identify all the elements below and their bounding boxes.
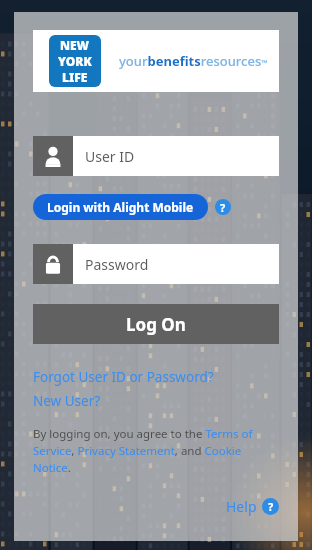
button[interactable]: By logging on, you agree to the Terms of… <box>33 426 279 476</box>
button[interactable]: User ID <box>33 136 279 176</box>
staticText: User ID <box>85 147 135 166</box>
other: User ID <box>33 136 73 176</box>
staticText: ? <box>220 200 226 215</box>
other: Password <box>33 244 73 284</box>
staticText: Help <box>226 497 257 516</box>
button[interactable]: Password <box>33 244 279 284</box>
button[interactable]: Help <box>215 199 231 215</box>
staticText: Login with Alight Mobile <box>47 199 194 215</box>
staticText: Password <box>85 255 149 274</box>
staticText: yourbenefitsresources™ <box>119 52 268 70</box>
button[interactable]: Log On <box>33 304 279 344</box>
staticText: Log On <box>126 313 186 336</box>
staticText: LIFE <box>62 69 88 85</box>
button[interactable]: Forgot User ID or Password? <box>33 368 214 386</box>
staticText: ? <box>268 499 274 514</box>
button[interactable]: New User? <box>33 392 101 410</box>
staticText: NEW <box>60 37 90 53</box>
button[interactable]: Help <box>226 497 279 516</box>
staticText: YORK <box>58 53 92 69</box>
button[interactable]: Help <box>262 498 279 515</box>
button[interactable]: Login with Alight Mobile <box>33 194 208 220</box>
